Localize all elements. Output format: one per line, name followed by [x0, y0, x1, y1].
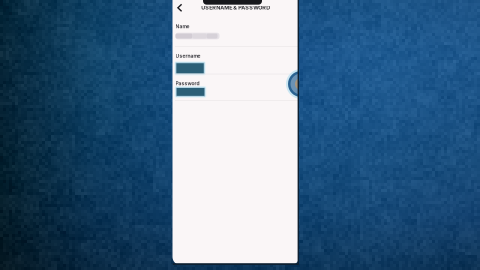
staticText: USERNAME & PASSWORD: [201, 4, 270, 11]
staticText: Username: [175, 53, 200, 59]
staticText: Name: [175, 23, 189, 29]
button[interactable]: Back: [174, 0, 186, 15]
staticText: Password: [175, 80, 199, 86]
